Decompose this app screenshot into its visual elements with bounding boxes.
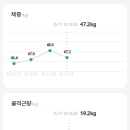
staticText: 25.10.17 bbox=[7, 73, 21, 76]
staticText: 46.4 bbox=[10, 55, 17, 60]
staticText: (kg) bbox=[32, 101, 38, 106]
staticText: (kg) bbox=[22, 12, 28, 17]
staticText: 25.11.14 14:28 bbox=[53, 110, 77, 116]
staticText: 48.0 bbox=[46, 42, 53, 47]
staticText: 47.2 bbox=[63, 49, 70, 54]
staticText: 47.2kg bbox=[80, 21, 96, 28]
staticText: 체중 bbox=[11, 11, 21, 18]
staticText: 47.0 bbox=[27, 51, 34, 56]
staticText: 25.10.31 bbox=[24, 73, 38, 76]
staticText: 골격근량 bbox=[11, 100, 31, 107]
staticText: 25.11.14 14:28 bbox=[53, 21, 77, 27]
staticText: 25.11.14 bbox=[59, 73, 73, 76]
staticText: 19.2kg bbox=[80, 110, 96, 117]
staticText: 25.11.04 bbox=[42, 73, 56, 76]
